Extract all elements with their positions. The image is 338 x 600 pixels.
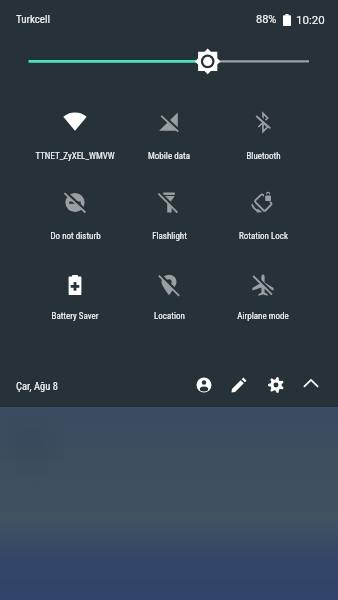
button[interactable]: Flashlight xyxy=(122,176,216,256)
button[interactable]: Mobile data xyxy=(122,96,216,176)
staticText: Rotation Lock xyxy=(239,231,288,242)
staticText: Airplane mode xyxy=(237,311,289,322)
staticText: Bluetooth xyxy=(246,151,281,162)
button[interactable]: Do not disturb xyxy=(28,176,122,256)
staticText: TTNET_ZyXEL_WMVW xyxy=(35,151,115,162)
staticText: Flashlight xyxy=(152,231,187,242)
staticText: Turkcell xyxy=(16,13,51,26)
button[interactable]: Airplane mode xyxy=(216,256,310,336)
staticText: Çar, Ağu 8 xyxy=(16,380,58,392)
button[interactable]: Location xyxy=(122,256,216,336)
staticText: 88% xyxy=(256,13,277,26)
staticText: Do not disturb xyxy=(50,231,101,242)
button[interactable]: Collapse panel xyxy=(293,367,329,403)
staticText: Battery Saver xyxy=(51,311,99,322)
button[interactable]: Bluetooth xyxy=(216,96,310,176)
staticText: Location xyxy=(154,311,185,322)
staticText: 10:20 xyxy=(296,13,325,26)
button[interactable]: Battery Saver xyxy=(28,256,122,336)
button[interactable]: Account xyxy=(186,367,222,403)
button[interactable]: TTNET_ZyXEL_WMVW xyxy=(28,96,122,176)
button[interactable]: Edit xyxy=(221,367,257,403)
staticText: Mobile data xyxy=(148,151,190,162)
button[interactable]: Rotation Lock xyxy=(216,176,310,256)
button[interactable]: Settings xyxy=(258,367,294,403)
